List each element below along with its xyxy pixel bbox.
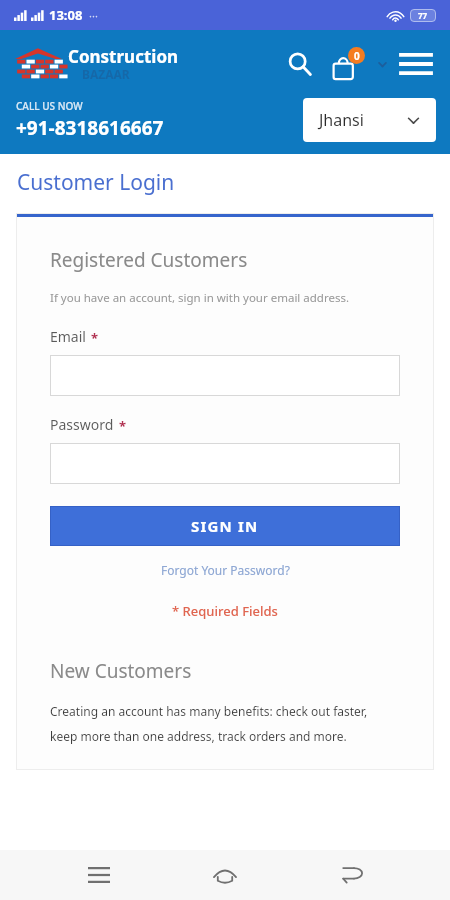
button[interactable]: Expand cart: [372, 54, 392, 74]
staticText: BAZAAR: [82, 66, 130, 82]
staticText: ···: [89, 8, 98, 23]
staticText: 0: [354, 49, 360, 63]
button[interactable]: [50, 355, 400, 396]
staticText: keep more than one address, track orders…: [50, 728, 347, 744]
button[interactable]: Menu: [396, 44, 436, 84]
staticText: SIGN IN: [191, 516, 259, 536]
staticText: +91-8318616667: [16, 115, 164, 141]
button[interactable]: CALL US NOW: [16, 99, 164, 141]
button[interactable]: SIGN IN: [50, 506, 400, 546]
button[interactable]: Cart, 0 items: [326, 42, 370, 86]
staticText: 77: [418, 10, 428, 21]
staticText: Customer Login: [17, 168, 175, 197]
button[interactable]: Home: [197, 850, 253, 900]
staticText: 13:08: [49, 6, 83, 24]
staticText: New Customers: [50, 658, 192, 684]
staticText: Email: [50, 327, 86, 346]
staticText: Creating an account has many benefits: c…: [50, 703, 368, 719]
button[interactable]: Back: [324, 850, 380, 900]
staticText: CALL US NOW: [16, 99, 83, 113]
button[interactable]: Forgot Your Password?: [157, 558, 294, 582]
button[interactable]: Recent apps: [71, 850, 127, 900]
staticText: If you have an account, sign in with you…: [50, 290, 350, 306]
staticText: *: [91, 329, 99, 347]
button[interactable]: [50, 443, 400, 484]
staticText: *: [119, 417, 127, 435]
staticText: Password: [50, 415, 114, 434]
staticText: Construction: [68, 45, 179, 68]
staticText: Registered Customers: [50, 247, 248, 273]
button[interactable]: Search: [280, 44, 320, 84]
staticText: Jhansi: [319, 109, 364, 131]
staticText: * Required Fields: [172, 602, 278, 620]
button[interactable]: Construction Bazaar home: [14, 45, 179, 84]
button[interactable]: Jhansi: [303, 98, 436, 142]
